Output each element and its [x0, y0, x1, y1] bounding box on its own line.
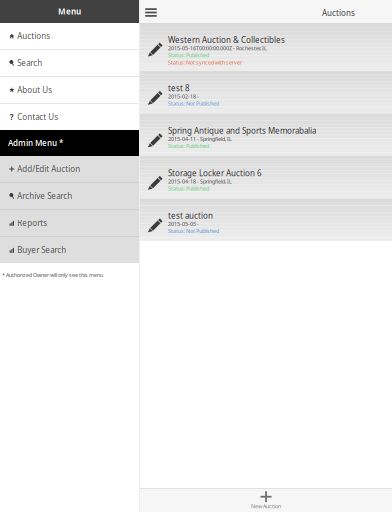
staticText: Search — [17, 58, 42, 68]
staticText: 2015-04-18 - Springfield, IL — [168, 178, 232, 185]
button[interactable]: Spring Antique and Sports Memorabalia — [140, 113, 392, 156]
button[interactable]: Auctions — [0, 23, 139, 49]
staticText: Auctions — [17, 31, 50, 41]
button[interactable]: Add/Edit Auction — [0, 156, 139, 182]
button[interactable]: Reports — [0, 210, 139, 236]
staticText: test auction — [168, 210, 213, 221]
button[interactable]: Western Auction & Collectibles — [140, 24, 392, 71]
staticText: Spring Antique and Sports Memorabalia — [168, 125, 316, 136]
button[interactable]: test auction — [140, 198, 392, 241]
button[interactable]: Admin Menu * — [0, 130, 139, 156]
staticText: test 8 — [168, 83, 190, 93]
staticText: Storage Locker Auction 6 — [168, 168, 262, 178]
staticText: Western Auction & Collectibles — [168, 35, 285, 45]
button[interactable]: Storage Locker Auction 6 — [140, 156, 392, 198]
staticText: Reports — [17, 218, 47, 228]
staticText: Add/Edit Auction — [17, 164, 80, 174]
staticText: Status: Published — [168, 52, 209, 59]
staticText: 2015-05-05 - — [168, 220, 199, 228]
staticText: Buyer Search — [17, 245, 66, 255]
staticText: 2015-02-18 - — [168, 93, 199, 100]
button[interactable]: ? — [0, 104, 139, 130]
staticText: Status: Published — [168, 185, 209, 192]
staticText: Status: Not Published — [168, 227, 219, 235]
staticText: ? — [10, 112, 14, 122]
button[interactable]: About Us — [0, 77, 139, 103]
button[interactable]: Menu — [0, 0, 139, 23]
staticText: 2015-05-16T00:00:00.000Z - Rochester, IL — [168, 45, 267, 52]
staticText: Contact Us — [17, 112, 58, 122]
staticText: Admin Menu * — [8, 138, 63, 148]
staticText: About Us — [17, 85, 52, 95]
button[interactable]: New Auction — [140, 489, 392, 512]
staticText: New Auction — [251, 503, 281, 510]
button[interactable]: Archive Search — [0, 183, 139, 209]
staticText: Status: Not synced with server — [168, 59, 242, 66]
staticText: Archive Search — [17, 191, 72, 201]
staticText: * Authorized Owner will only see this me… — [2, 271, 103, 279]
staticText: Auctions — [322, 8, 355, 18]
staticText: 2015-04-11 - Springfield, IL — [168, 135, 232, 143]
staticText: Menu — [58, 6, 81, 17]
button[interactable]: Menu — [140, 0, 162, 23]
staticText: Status: Not Published — [168, 100, 219, 107]
button[interactable]: test 8 — [140, 71, 392, 113]
staticText: Status: Published — [168, 142, 209, 150]
button[interactable]: Buyer Search — [0, 237, 139, 263]
button[interactable]: Search — [0, 50, 139, 76]
